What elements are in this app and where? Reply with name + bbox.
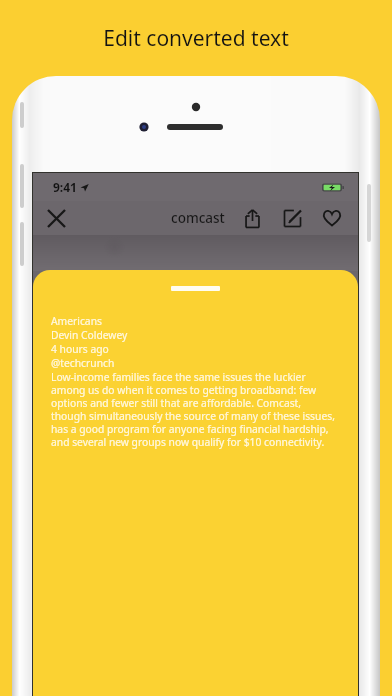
staticText: comcast [171,209,225,227]
button[interactable]: Share [238,204,266,232]
staticText: 4 hours ago [51,342,109,356]
button[interactable]: Americans [33,270,358,696]
button[interactable]: comcast [169,203,227,233]
button[interactable]: Edit [278,204,306,232]
button[interactable]: Close [33,201,79,235]
staticText: Edit converted text [103,24,289,53]
staticText: Americans [51,314,102,328]
staticText: 9:41 [53,179,77,195]
staticText: @techcrunch [51,356,115,370]
button[interactable]: Favorite [318,204,346,232]
staticText: Low-income families face the same issues… [51,370,339,449]
staticText: Devin Coldewey [51,328,128,342]
